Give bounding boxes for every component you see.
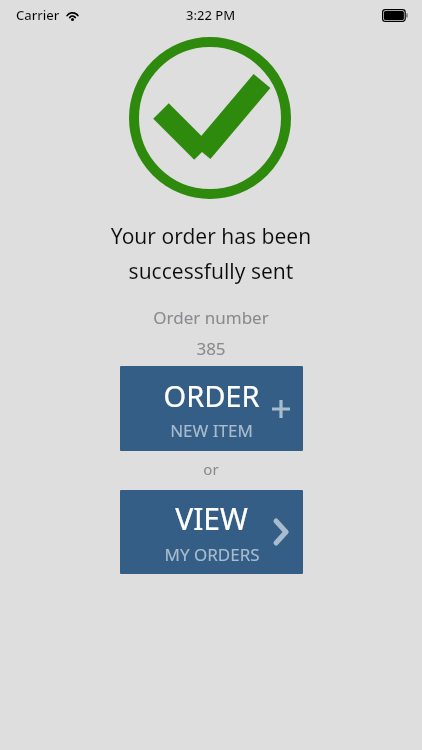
staticText: 3:22 PM	[186, 6, 236, 24]
staticText: VIEW	[175, 498, 248, 539]
staticText: MY ORDERS	[164, 543, 260, 566]
staticText: or	[0, 459, 422, 479]
staticText: Carrier	[16, 6, 60, 24]
button[interactable]: VIEW	[120, 490, 303, 574]
staticText: Your order has been successfully sent	[0, 222, 422, 285]
button[interactable]: ORDER	[120, 366, 303, 451]
staticText: Order number 385	[0, 306, 422, 360]
staticText: ORDER	[163, 376, 260, 415]
staticText: NEW ITEM	[170, 419, 253, 442]
